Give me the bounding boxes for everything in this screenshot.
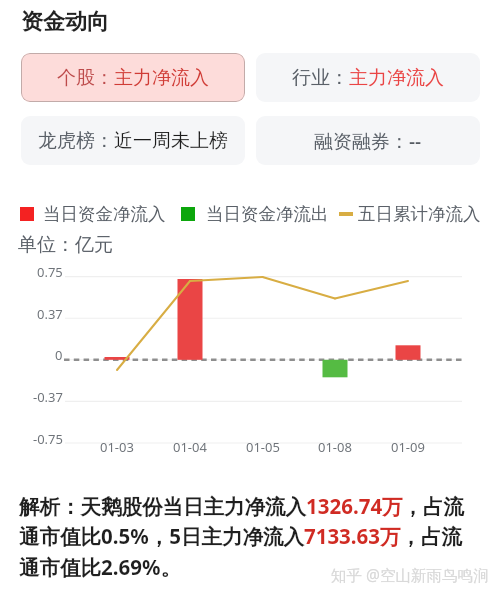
staticText: 01-08 xyxy=(318,438,352,454)
button[interactable]: 行业：主力净流入 xyxy=(256,53,480,102)
staticText: 01-04 xyxy=(173,438,207,454)
staticText: 五日累计净流入 xyxy=(358,203,481,225)
staticText: 个股：主力净流入 xyxy=(57,66,209,90)
staticText: 融资融券：-- xyxy=(314,128,422,154)
staticText: -0.75 xyxy=(33,430,63,444)
staticText: 01-05 xyxy=(246,438,280,454)
staticText: 行业：主力净流入 xyxy=(292,66,444,90)
staticText: 0.75 xyxy=(37,263,63,277)
staticText: 单位：亿元 xyxy=(18,233,113,257)
button[interactable]: 个股：主力净流入 xyxy=(21,53,245,102)
button[interactable]: 融资融券：-- xyxy=(256,116,480,165)
staticText: 01-09 xyxy=(391,438,425,454)
staticText: 知乎 @空山新雨鸟鸣涧 xyxy=(331,564,489,585)
button[interactable]: 龙虎榜：近一周未上榜 xyxy=(21,116,245,165)
staticText: 龙虎榜：近一周未上榜 xyxy=(38,129,228,153)
staticText: 01-03 xyxy=(100,438,134,454)
staticText: 资金动向 xyxy=(21,8,109,36)
staticText: 解析：天鹅股份当日主力净流入1326.74万，占流 通市值比0.5%，5日主力净… xyxy=(19,492,465,581)
staticText: 当日资金净流出 xyxy=(206,203,329,225)
staticText: 0.37 xyxy=(37,305,63,319)
staticText: 当日资金净流入 xyxy=(43,203,166,225)
staticText: 0 xyxy=(55,346,63,360)
staticText: -0.37 xyxy=(33,388,63,402)
